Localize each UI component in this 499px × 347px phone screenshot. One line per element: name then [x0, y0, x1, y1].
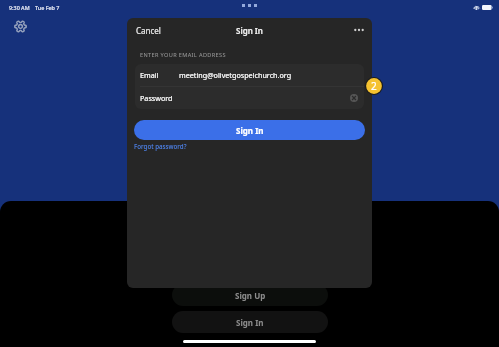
- button[interactable]: Sign Up: [172, 284, 328, 306]
- staticText: Password: [140, 93, 173, 103]
- button[interactable]: Forgot password?: [134, 142, 187, 150]
- staticText: Sign In: [236, 25, 263, 36]
- staticText: Email: [140, 70, 159, 80]
- staticText: Tue Feb 7: [35, 4, 60, 11]
- staticText: 2: [371, 79, 377, 93]
- button[interactable]: Password: [135, 87, 364, 109]
- staticText: ENTER YOUR EMAIL ADDRESS: [140, 51, 226, 59]
- button[interactable]: Settings: [12, 18, 28, 34]
- staticText: Cancel: [136, 25, 161, 36]
- button[interactable]: Email: [135, 64, 364, 86]
- button[interactable]: More options: [351, 22, 367, 38]
- staticText: Forgot password?: [134, 142, 187, 150]
- button[interactable]: Cancel: [131, 22, 166, 39]
- staticText: Sign In: [236, 125, 264, 136]
- button[interactable]: Sign In: [172, 311, 328, 333]
- staticText: 9:30 AM: [9, 4, 30, 11]
- staticText: Sign In: [236, 317, 264, 328]
- staticText: meeting@olivetgospelchurch.org: [179, 70, 292, 80]
- staticText: Sign Up: [235, 290, 266, 301]
- button[interactable]: Sign In: [134, 120, 365, 140]
